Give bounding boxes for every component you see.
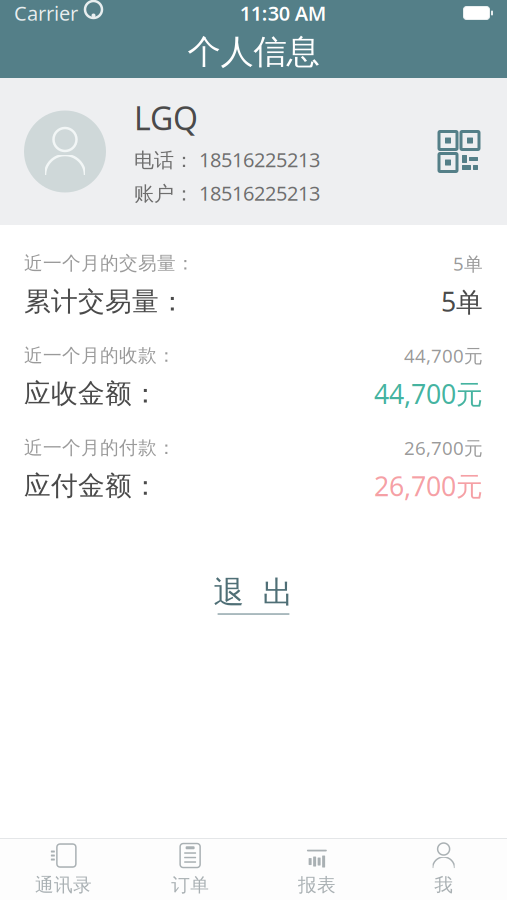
- staticText: 电话： 18516225213: [134, 146, 320, 173]
- button[interactable]: 报表: [253, 839, 380, 900]
- staticText: 近一个月的收款：: [24, 344, 176, 367]
- button[interactable]: 订单: [127, 839, 254, 900]
- staticText: 应付金额：: [24, 469, 159, 502]
- staticText: 26,700元: [374, 468, 483, 504]
- button[interactable]: 通讯录: [0, 839, 127, 900]
- staticText: 近一个月的交易量：: [24, 252, 195, 275]
- staticText: 个人信息: [187, 31, 319, 72]
- staticText: 5单: [453, 251, 483, 276]
- staticText: LGQ: [134, 97, 198, 139]
- staticText: 44,700元: [374, 376, 483, 411]
- button[interactable]: 我: [380, 839, 507, 900]
- staticText: 订单: [171, 873, 209, 896]
- staticText: 报表: [298, 873, 336, 896]
- staticText: 26,700元: [404, 435, 483, 460]
- staticText: 11:30 AM: [240, 0, 327, 26]
- staticText: 近一个月的付款：: [24, 436, 176, 459]
- staticText: 应收金额：: [24, 377, 159, 410]
- staticText: 我: [434, 873, 453, 896]
- staticText: 退 出: [213, 574, 293, 611]
- staticText: 44,700元: [404, 343, 483, 368]
- staticText: 5单: [441, 284, 483, 319]
- button[interactable]: 二维码: [429, 121, 489, 181]
- staticText: Carrier: [14, 0, 78, 26]
- button[interactable]: 退 出: [197, 566, 309, 623]
- staticText: 累计交易量：: [24, 285, 186, 318]
- staticText: 账户： 18516225213: [134, 180, 320, 206]
- staticText: 通讯录: [35, 873, 92, 896]
